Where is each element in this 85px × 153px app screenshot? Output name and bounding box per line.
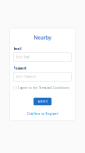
staticText: Enter Email [16, 55, 30, 59]
staticText: Password [13, 67, 26, 70]
button[interactable]: Submit [33, 98, 51, 105]
staticText: Click Here to Register! [26, 112, 58, 116]
button[interactable]: I agree to the Terms and Conditions [13, 86, 71, 90]
staticText: Submit [37, 100, 47, 103]
staticText: Nearby [33, 34, 51, 41]
staticText: Enter Password [16, 75, 36, 78]
staticText: Email [13, 47, 21, 51]
button[interactable]: Click Here to Register! [26, 112, 58, 116]
staticText: I agree to the Terms and Conditions [18, 86, 69, 90]
